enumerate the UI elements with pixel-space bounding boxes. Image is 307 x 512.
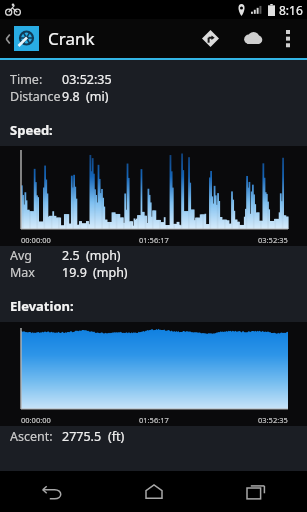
staticText: Max Speed: [10, 264, 62, 281]
staticText: Avg Speed: [10, 247, 62, 264]
staticText: (mph) [93, 264, 128, 281]
button[interactable]: More options [273, 19, 303, 58]
staticText: 01:56:17 [139, 235, 169, 245]
staticText: 03:52:35 [62, 71, 112, 88]
staticText: Distance: [10, 88, 62, 105]
staticText: 00:00:00 [21, 415, 51, 425]
staticText: 19.9 [62, 264, 87, 281]
staticText: 00:00:00 [21, 235, 51, 245]
staticText: 8:16 [279, 2, 303, 18]
button[interactable]: Up [0, 20, 41, 57]
staticText: 2775.5 [62, 428, 102, 445]
staticText: Elevation: [10, 297, 74, 315]
staticText: 03:52:35 [258, 415, 288, 425]
button[interactable]: Home [103, 471, 205, 512]
staticText: (mph) [86, 247, 121, 264]
button[interactable]: Back [0, 471, 103, 512]
button[interactable]: Directions [189, 19, 231, 58]
staticText: Ascent: [10, 428, 53, 445]
button[interactable]: Recents [205, 471, 307, 512]
staticText: (ft) [108, 428, 125, 445]
staticText: Crank [48, 27, 95, 50]
staticText: (mi) [86, 88, 109, 105]
button[interactable]: Cloud upload [231, 19, 273, 58]
staticText: 03:52:35 [258, 235, 288, 245]
staticText: Time: [10, 71, 43, 88]
staticText: 01:56:17 [139, 415, 169, 425]
staticText: 2.5 [62, 247, 80, 264]
staticText: Speed: [10, 121, 53, 139]
staticText: 9.8 [62, 88, 80, 105]
